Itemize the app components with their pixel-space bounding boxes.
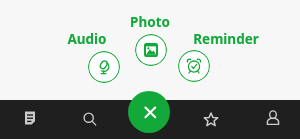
button[interactable]: Reminder: [178, 50, 210, 82]
button[interactable]: Close: [128, 91, 170, 133]
staticText: Photo: [130, 13, 170, 29]
button[interactable]: Notes: [0, 100, 60, 139]
staticText: Reminder: [193, 30, 259, 46]
button[interactable]: Audio: [88, 51, 120, 83]
button[interactable]: Account: [240, 100, 300, 139]
button[interactable]: Photo: [135, 34, 167, 66]
staticText: Audio: [67, 30, 107, 46]
button[interactable]: Search: [60, 100, 120, 139]
button[interactable]: Shortcuts: [180, 100, 240, 139]
